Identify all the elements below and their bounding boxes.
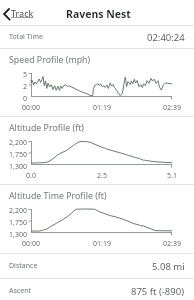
button[interactable]: Distance: [0, 254, 194, 278]
staticText: Ascent: [9, 286, 31, 296]
staticText: 875 ft (-890): [131, 285, 185, 298]
staticText: 02:39: [152, 103, 192, 113]
staticText: 1,300: [0, 162, 27, 172]
staticText: 1,750: [0, 218, 27, 228]
staticText: 00:00: [11, 103, 51, 113]
staticText: 01:19: [82, 103, 122, 113]
staticText: 1,300: [0, 230, 27, 240]
button[interactable]: Total Time: [0, 26, 194, 48]
staticText: 2: [0, 82, 27, 92]
staticText: 02:40:24: [147, 31, 185, 44]
staticText: Track: [11, 7, 34, 19]
staticText: 0: [0, 94, 27, 104]
staticText: Altitude Time Profile (ft): [9, 190, 107, 202]
staticText: Total Time: [9, 32, 43, 42]
button[interactable]: Ascent: [0, 279, 194, 300]
staticText: Altitude Profile (ft): [9, 122, 85, 134]
staticText: 2.5: [82, 171, 122, 181]
staticText: 00:00: [11, 239, 51, 249]
staticText: Speed Profile (mph): [9, 54, 91, 66]
staticText: 1,750: [0, 150, 27, 160]
staticText: 02:39: [152, 239, 192, 249]
staticText: 0.0: [11, 171, 51, 181]
button[interactable]: Track: [1, 4, 39, 22]
staticText: 01:19: [82, 239, 122, 249]
staticText: 5.08 mi: [152, 260, 185, 273]
staticText: 5: [0, 70, 27, 80]
staticText: Ravens Nest: [66, 7, 131, 21]
staticText: 2,200: [0, 138, 27, 148]
staticText: Distance: [9, 261, 38, 271]
staticText: 2,200: [0, 206, 27, 216]
staticText: 5.1: [152, 171, 192, 181]
